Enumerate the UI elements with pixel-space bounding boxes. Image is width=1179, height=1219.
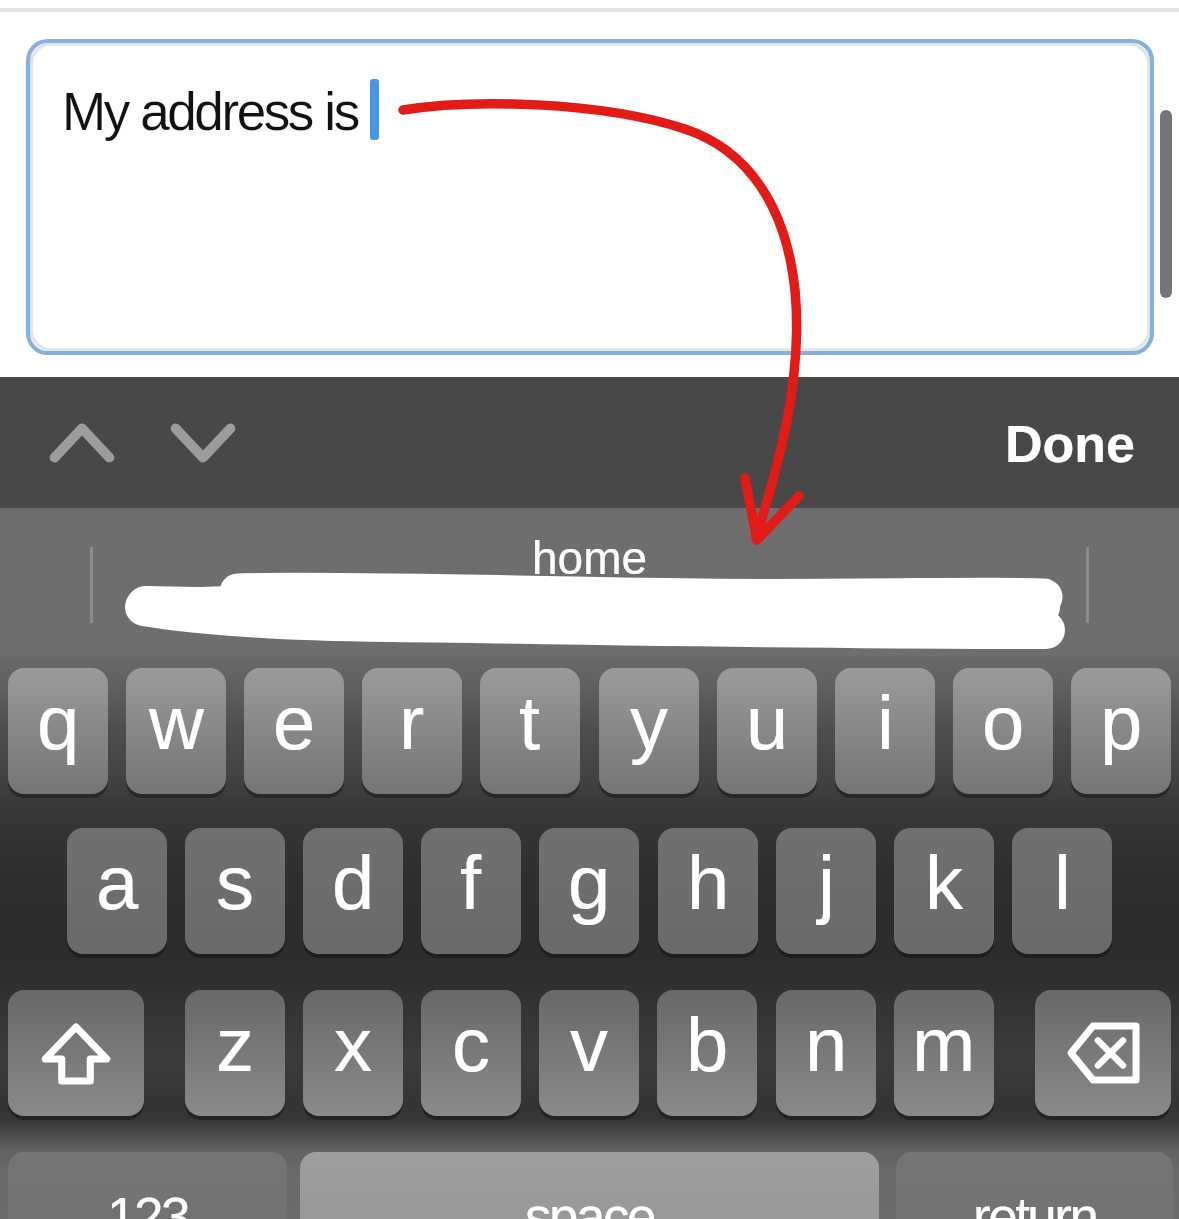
staticText: p [1100, 680, 1143, 765]
staticText: r [399, 680, 425, 765]
button[interactable]: q [8, 668, 108, 794]
button[interactable]: z [185, 990, 285, 1116]
staticText: g [568, 840, 611, 925]
button[interactable]: v [539, 990, 639, 1116]
button[interactable]: Backspace [1035, 990, 1171, 1116]
button[interactable]: c [421, 990, 521, 1116]
button[interactable]: w [126, 668, 226, 794]
button[interactable]: t [480, 668, 580, 794]
staticText: l [1054, 840, 1071, 925]
button[interactable]: Previous field [26, 390, 138, 496]
staticText: return [973, 1187, 1097, 1219]
staticText: m [912, 1002, 976, 1087]
staticText: b [686, 1002, 729, 1087]
staticText: o [982, 680, 1025, 765]
button[interactable]: o [953, 668, 1053, 794]
button[interactable]: Done [980, 402, 1160, 486]
staticText: t [519, 680, 541, 765]
staticText: space [525, 1187, 654, 1219]
button[interactable]: Next field [147, 390, 259, 496]
button[interactable]: k [894, 828, 994, 954]
button[interactable]: h [658, 828, 758, 954]
button[interactable]: r [362, 668, 462, 794]
staticText: a [96, 840, 139, 925]
staticText: k [925, 840, 963, 925]
staticText: f [460, 840, 482, 925]
staticText: e [273, 680, 316, 765]
staticText: h [687, 840, 730, 925]
staticText: w [149, 680, 204, 765]
staticText: u [746, 680, 789, 765]
staticText: c [452, 1002, 490, 1087]
button[interactable]: u [717, 668, 817, 794]
button[interactable]: e [244, 668, 344, 794]
button[interactable]: 123 [8, 1152, 287, 1219]
button[interactable]: d [303, 828, 403, 954]
button[interactable]: m [894, 990, 994, 1116]
staticText: q [37, 680, 80, 765]
staticText: j [818, 840, 835, 925]
staticText: n [805, 1002, 848, 1087]
button[interactable]: home [420, 524, 760, 590]
staticText: v [570, 1002, 608, 1087]
button[interactable]: a [67, 828, 167, 954]
button[interactable]: j [776, 828, 876, 954]
button[interactable]: l [1012, 828, 1112, 954]
staticText: 123 [107, 1187, 188, 1219]
staticText: x [334, 1002, 372, 1087]
button[interactable]: s [185, 828, 285, 954]
button[interactable]: i [835, 668, 935, 794]
button[interactable]: return [896, 1152, 1173, 1219]
staticText: z [216, 1002, 254, 1087]
button[interactable]: x [303, 990, 403, 1116]
button[interactable]: b [657, 990, 757, 1116]
staticText: d [332, 840, 375, 925]
button[interactable]: n [776, 990, 876, 1116]
button[interactable]: space [300, 1152, 879, 1219]
button[interactable]: Shift [8, 990, 144, 1116]
button[interactable]: p [1071, 668, 1171, 794]
button[interactable]: g [539, 828, 639, 954]
button[interactable]: y [599, 668, 699, 794]
staticText: home [532, 532, 648, 583]
staticText: Done [1005, 415, 1135, 473]
staticText: i [877, 680, 894, 765]
staticText: My address is [62, 82, 358, 141]
button[interactable]: f [421, 828, 521, 954]
staticText: s [216, 840, 254, 925]
staticText: y [630, 680, 668, 765]
